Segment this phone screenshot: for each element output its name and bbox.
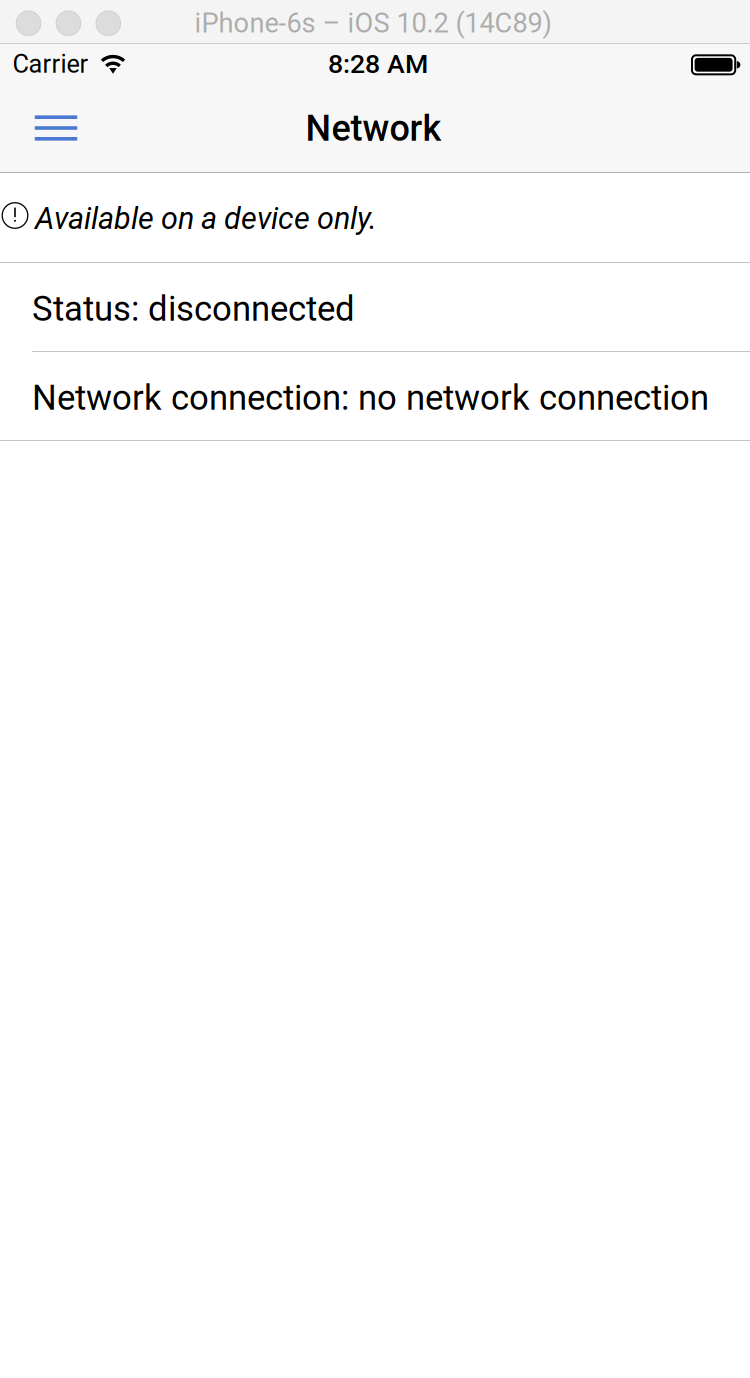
button[interactable]: Menu — [11, 84, 101, 172]
staticText: Carrier — [12, 49, 88, 79]
staticText: Status: disconnected — [32, 289, 355, 329]
staticText: Available on a device only. — [35, 201, 377, 236]
button[interactable]: Network connection: no network connectio… — [0, 352, 750, 440]
staticText: Network — [305, 107, 441, 150]
staticText: Network connection: no network connectio… — [32, 378, 709, 418]
staticText: iPhone-6s – iOS 10.2 (14C89) — [194, 7, 551, 39]
button[interactable]: Available on a device only. — [0, 173, 750, 262]
staticText: 8:28 AM — [328, 48, 428, 80]
button[interactable]: Status: disconnected — [0, 263, 750, 351]
